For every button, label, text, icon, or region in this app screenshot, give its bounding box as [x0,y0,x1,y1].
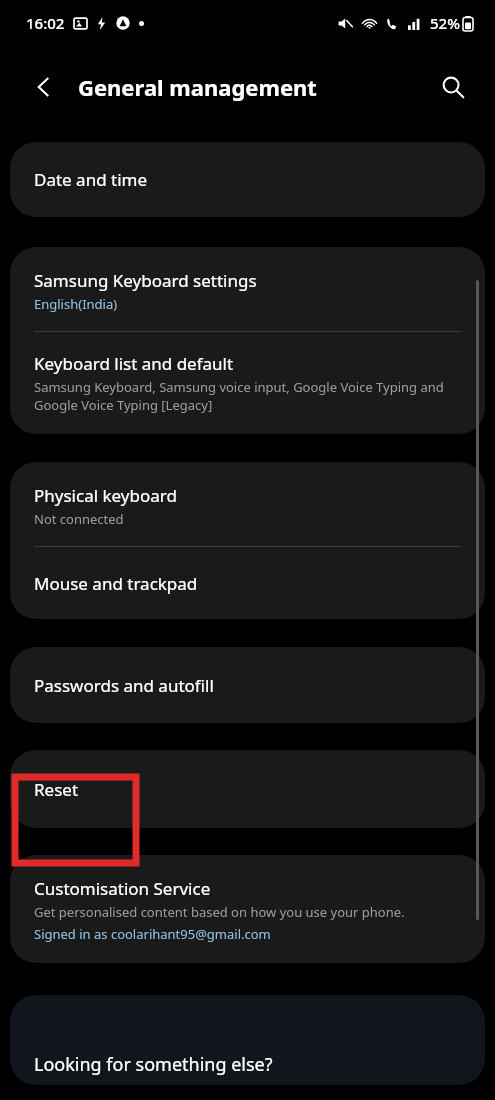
staticText: 52% [430,13,460,33]
button[interactable]: Samsung Keyboard settings [10,247,485,331]
staticText: Keyboard list and default [34,352,234,375]
staticText: Looking for something else? [34,1052,273,1077]
button[interactable]: Keyboard list and default [10,332,485,434]
staticText: General management [78,72,317,102]
button[interactable]: Looking for something else? [10,995,485,1085]
staticText: 16:02 [26,13,65,33]
button[interactable]: Physical keyboard [10,462,485,546]
staticText: Physical keyboard [34,484,177,507]
button[interactable]: Back [20,63,68,111]
staticText: Samsung Keyboard, Samsung voice input, G… [34,378,461,414]
button[interactable]: Search [429,63,477,111]
staticText: Reset [34,778,79,801]
staticText: Signed in as coolarihant95@gmail.com [34,925,271,943]
staticText: Date and time [34,168,148,191]
staticText: Mouse and trackpad [34,572,198,595]
staticText: Get personalised content based on how yo… [34,903,405,921]
staticText: Passwords and autofill [34,674,214,697]
staticText: Samsung Keyboard settings [34,269,257,292]
button[interactable]: Reset [10,750,485,828]
button[interactable]: Date and time [10,142,485,217]
button[interactable]: Customisation Service [10,855,485,963]
button[interactable]: Passwords and autofill [10,647,485,723]
staticText: Customisation Service [34,877,211,900]
staticText: Not connected [34,510,124,528]
staticText: English(India) [34,295,118,313]
button[interactable]: Mouse and trackpad [10,547,485,619]
